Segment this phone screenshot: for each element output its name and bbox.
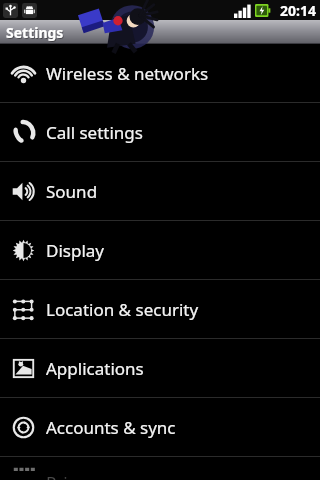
staticText: Privacy — [46, 471, 103, 480]
staticText: Wireless & networks — [46, 62, 209, 85]
button[interactable]: Wireless & networks — [0, 44, 320, 102]
button[interactable]: Display — [0, 221, 320, 279]
button[interactable]: Privacy — [0, 457, 320, 480]
staticText: Settings — [7, 24, 65, 43]
staticText: Sound — [46, 180, 98, 203]
button[interactable]: Accounts & sync — [0, 398, 320, 456]
staticText: Call settings — [46, 121, 143, 144]
button[interactable]: Call settings — [0, 103, 320, 161]
staticText: Applications — [46, 357, 144, 380]
staticText: Accounts & sync — [46, 416, 176, 439]
button[interactable]: Location & security — [0, 280, 320, 338]
staticText: Settings — [6, 23, 64, 42]
button[interactable]: Sound — [0, 162, 320, 220]
staticText: Location & security — [46, 298, 199, 321]
staticText: Display — [46, 239, 104, 262]
button[interactable]: Applications — [0, 339, 320, 397]
staticText: 20:14 — [280, 1, 316, 20]
